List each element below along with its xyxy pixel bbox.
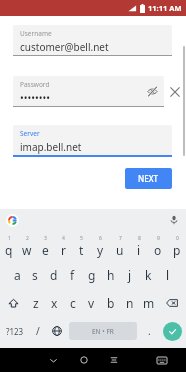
button[interactable]: Change language: [47, 317, 66, 345]
button[interactable]: m: [139, 289, 158, 317]
button[interactable]: s: [26, 261, 44, 289]
staticText: 0: [176, 235, 179, 242]
button[interactable]: d: [44, 261, 63, 289]
button[interactable]: n: [120, 289, 139, 317]
staticText: y: [97, 242, 104, 258]
button[interactable]: EN • FR: [69, 322, 137, 340]
staticText: imap.bell.net: [20, 140, 82, 154]
button[interactable]: Clear: [164, 77, 186, 107]
button[interactable]: Backspace: [158, 289, 186, 317]
staticText: 11:11 AM: [148, 3, 182, 13]
staticText: ••••••••: [20, 91, 51, 105]
staticText: k: [145, 267, 152, 283]
button[interactable]: Toggle password visibility: [147, 86, 158, 97]
button[interactable]: k: [139, 261, 158, 289]
button[interactable]: .: [140, 317, 158, 345]
button[interactable]: z: [27, 289, 45, 317]
staticText: r: [61, 242, 66, 258]
button[interactable]: 7: [110, 231, 129, 261]
staticText: 7: [119, 235, 122, 242]
staticText: x: [51, 295, 58, 311]
button[interactable]: Username: [13, 25, 172, 56]
button[interactable]: Home: [69, 348, 99, 372]
staticText: Server: [20, 129, 40, 138]
staticText: d: [50, 267, 58, 283]
button[interactable]: Recent apps: [99, 348, 129, 372]
staticText: q: [5, 242, 13, 258]
staticText: customer@bell.net: [20, 40, 109, 54]
staticText: EN • FR: [92, 327, 114, 336]
button[interactable]: 3: [36, 231, 54, 261]
staticText: 6: [99, 235, 102, 242]
button[interactable]: l: [158, 261, 177, 289]
button[interactable]: g: [82, 261, 101, 289]
staticText: 8: [138, 235, 141, 242]
button[interactable]: Voice input: [169, 215, 179, 225]
staticText: c: [70, 295, 76, 311]
staticText: 1: [8, 235, 11, 242]
staticText: e: [42, 242, 49, 258]
button[interactable]: x: [45, 289, 63, 317]
staticText: Username: [20, 29, 52, 38]
staticText: h: [107, 267, 115, 283]
staticText: v: [88, 295, 95, 311]
button[interactable]: 0: [167, 231, 186, 261]
staticText: t: [79, 242, 84, 258]
staticText: l: [166, 267, 170, 283]
staticText: f: [70, 267, 75, 283]
staticText: b: [107, 295, 115, 311]
button[interactable]: 8: [129, 231, 148, 261]
button[interactable]: 2: [18, 231, 36, 261]
staticText: g: [88, 267, 96, 283]
button[interactable]: ?123: [0, 317, 29, 345]
button[interactable]: v: [82, 289, 101, 317]
staticText: m: [143, 295, 155, 311]
staticText: a: [14, 267, 21, 283]
staticText: 4: [62, 235, 65, 242]
button[interactable]: c: [63, 289, 82, 317]
staticText: z: [33, 295, 39, 311]
staticText: p: [173, 242, 181, 258]
button[interactable]: Enter: [163, 322, 182, 341]
button[interactable]: h: [101, 261, 120, 289]
staticText: s: [32, 267, 38, 283]
staticText: 2: [26, 235, 29, 242]
button[interactable]: a: [8, 261, 26, 289]
button[interactable]: 6: [91, 231, 110, 261]
staticText: 5: [80, 235, 83, 242]
button[interactable]: Shift: [0, 289, 27, 317]
staticText: NEXT: [138, 173, 159, 184]
button[interactable]: 1: [0, 231, 18, 261]
button[interactable]: Back: [38, 348, 69, 372]
button[interactable]: /: [29, 317, 47, 345]
staticText: Password: [20, 80, 50, 89]
staticText: ?123: [6, 326, 24, 337]
staticText: o: [154, 242, 162, 258]
button[interactable]: b: [101, 289, 120, 317]
staticText: .: [148, 324, 151, 338]
button[interactable]: 5: [72, 231, 91, 261]
button[interactable]: NEXT: [125, 168, 172, 189]
button[interactable]: 4: [54, 231, 72, 261]
staticText: n: [126, 295, 134, 311]
staticText: 3: [44, 235, 47, 242]
button[interactable]: Google: [6, 214, 19, 227]
button[interactable]: 9: [148, 231, 167, 261]
button[interactable]: Switch keyboard: [147, 348, 177, 372]
button[interactable]: Server: [13, 125, 172, 157]
staticText: /: [36, 324, 40, 338]
button[interactable]: f: [63, 261, 82, 289]
staticText: i: [137, 242, 141, 258]
button[interactable]: j: [120, 261, 139, 289]
staticText: w: [22, 242, 32, 258]
staticText: 9: [157, 235, 160, 242]
button[interactable]: Password: [13, 76, 164, 107]
staticText: u: [116, 242, 124, 258]
staticText: j: [128, 267, 132, 283]
